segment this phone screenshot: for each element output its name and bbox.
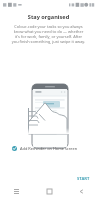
staticText: Colour-code your tasks so you always kno… [11,24,86,44]
button[interactable]: Recents [0,183,33,200]
button[interactable]: Back [65,183,97,200]
staticText: START [77,176,90,182]
button[interactable]: Home [33,183,65,200]
button[interactable]: Add Reminder on Home screen [0,144,90,153]
button[interactable]: START [70,173,97,185]
staticText: Add Reminder on Home screen [20,146,78,151]
staticText: Stay organised [0,13,97,21]
